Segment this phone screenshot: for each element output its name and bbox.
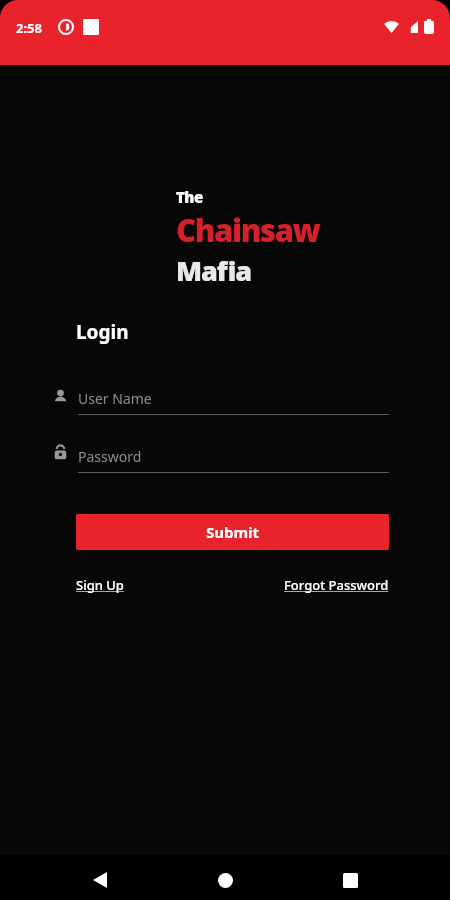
button[interactable]: Forgot Password [284,574,389,596]
staticText: Login [76,319,129,345]
staticText: Sign Up [76,576,124,594]
staticText: Chainsaw [176,209,320,251]
button[interactable]: User Name [48,383,393,419]
button[interactable]: Home [209,864,241,896]
staticText: Forgot Password [284,576,389,594]
staticText: Mafia [176,252,251,289]
staticText: Submit [206,522,260,542]
button[interactable]: Sign Up [76,574,124,596]
staticText: User Name [78,389,152,408]
staticText: The [176,187,203,207]
button[interactable]: Back [84,864,116,896]
button[interactable]: Password [48,440,393,476]
button[interactable]: Recent apps [334,864,366,896]
button[interactable]: Submit [76,514,389,550]
staticText: 2:58 [16,19,42,37]
staticText: Password [78,447,142,466]
